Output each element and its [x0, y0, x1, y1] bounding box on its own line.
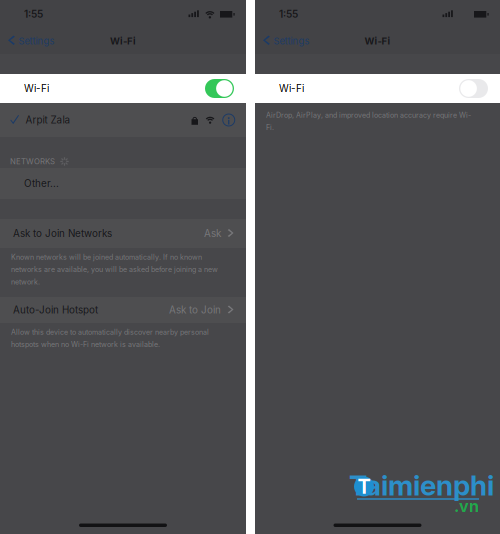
staticText: Arpit Zala: [25, 114, 70, 126]
staticText: NETWORKS: [10, 157, 55, 166]
button[interactable]: Ask to Join Networks: [0, 219, 246, 248]
staticText: Other...: [24, 178, 59, 189]
staticText: Allow this device to automatically disco…: [11, 328, 209, 349]
staticText: Ask: [204, 228, 221, 239]
staticText: Ask to Join Networks: [13, 228, 112, 239]
staticText: T: [357, 475, 370, 498]
button[interactable]: Auto-Join Hotspot: [0, 297, 246, 323]
staticText: Wi-Fi: [364, 35, 390, 47]
staticText: 1:55: [279, 8, 298, 20]
button[interactable]: Settings: [0, 29, 60, 52]
staticText: Wi-Fi: [279, 83, 304, 94]
staticText: Auto-Join Hotspot: [13, 304, 98, 316]
button[interactable]: Other...: [0, 168, 246, 199]
staticText: .vn: [454, 497, 479, 516]
staticText: Ask to Join: [169, 304, 221, 316]
button[interactable]: Arpit Zala: [0, 103, 246, 137]
button[interactable]: Wi-Fi: [255, 74, 500, 103]
staticText: Known networks will be joined automatica…: [11, 253, 218, 286]
staticText: AirDrop, AirPlay, and improved location …: [266, 111, 471, 132]
staticText: Wi-Fi: [110, 35, 136, 47]
staticText: Taimienphi: [349, 469, 494, 502]
staticText: Wi-Fi: [24, 83, 49, 94]
button[interactable]: Settings: [255, 29, 315, 52]
staticText: Settings: [273, 35, 309, 46]
staticText: 1:55: [24, 8, 43, 20]
staticText: Settings: [18, 35, 54, 46]
button[interactable]: Wi-Fi: [0, 74, 246, 103]
